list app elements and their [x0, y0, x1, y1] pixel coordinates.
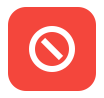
button[interactable]: Blocked — [8, 7, 96, 91]
